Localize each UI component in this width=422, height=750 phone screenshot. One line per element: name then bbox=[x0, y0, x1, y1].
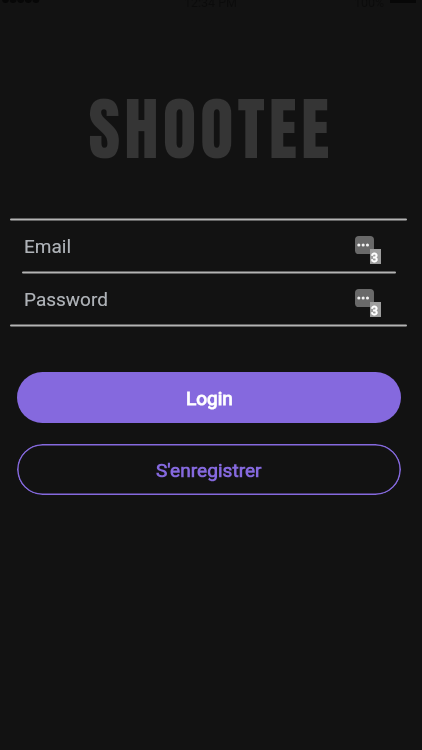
staticText: Login bbox=[186, 387, 233, 409]
button[interactable]: S'enregistrer bbox=[17, 444, 401, 495]
staticText: 3 bbox=[371, 250, 379, 265]
button[interactable]: Password bbox=[0, 273, 422, 325]
button[interactable]: Email bbox=[0, 220, 422, 272]
staticText: 3 bbox=[371, 303, 379, 318]
button[interactable]: Login bbox=[17, 372, 401, 423]
button[interactable]: Email suggestions bbox=[354, 235, 382, 263]
staticText: Password bbox=[24, 288, 108, 310]
staticText: S'enregistrer bbox=[156, 459, 262, 481]
button[interactable]: Password suggestions bbox=[354, 288, 382, 316]
staticText: Email bbox=[24, 235, 72, 257]
staticText: SHOOTEE bbox=[0, 77, 422, 181]
